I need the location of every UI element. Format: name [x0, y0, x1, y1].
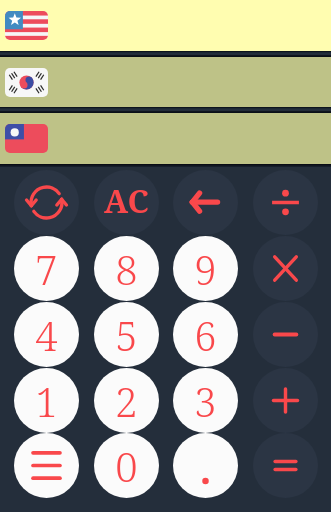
staticText: 2 [115, 374, 138, 428]
button[interactable]: Minus [253, 302, 318, 367]
staticText: 5 [115, 308, 138, 362]
button[interactable]: Backspace [173, 170, 238, 235]
button[interactable]: 0 [94, 433, 159, 498]
button[interactable]: Decimal point [173, 433, 238, 498]
button[interactable]: Menu [14, 433, 79, 498]
staticText: 1 [35, 374, 58, 428]
staticText: AC [104, 179, 149, 223]
button[interactable]: Refresh rates [14, 170, 79, 235]
button[interactable] [0, 113, 331, 164]
button[interactable]: AC [94, 170, 159, 235]
staticText: 4 [35, 308, 58, 362]
button[interactable]: Equals [253, 433, 318, 498]
button[interactable]: 7 [14, 236, 79, 301]
staticText: 3 [194, 374, 217, 428]
button[interactable]: 5 [94, 302, 159, 367]
button[interactable]: 8 [94, 236, 159, 301]
button[interactable] [0, 57, 331, 107]
staticText: 9 [194, 242, 217, 296]
button[interactable] [0, 0, 331, 51]
button[interactable]: 2 [94, 368, 159, 433]
staticText: 6 [194, 308, 217, 362]
button[interactable]: 4 [14, 302, 79, 367]
button[interactable]: Plus [253, 368, 318, 433]
button[interactable]: 3 [173, 368, 238, 433]
button[interactable]: 6 [173, 302, 238, 367]
button[interactable]: Multiply [253, 236, 318, 301]
staticText: 8 [115, 242, 138, 296]
staticText: 0 [115, 439, 138, 493]
staticText: 7 [35, 242, 58, 296]
button[interactable]: Divide [253, 170, 318, 235]
button[interactable]: 1 [14, 368, 79, 433]
button[interactable]: 9 [173, 236, 238, 301]
